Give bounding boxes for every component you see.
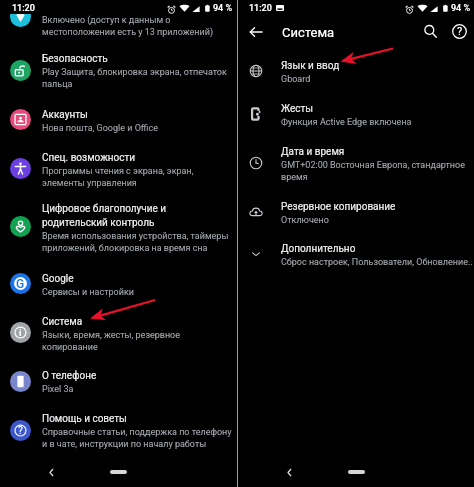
button[interactable]: Home [348, 470, 365, 474]
staticText: Функция Active Edge включена [281, 115, 412, 127]
button[interactable] [0, 412, 237, 448]
staticText: 94 % [213, 3, 233, 14]
staticText: Отключено [281, 213, 329, 225]
staticText: Нова пошта, Google и Office [42, 121, 159, 133]
button[interactable]: Back [45, 466, 58, 479]
staticText: Сервисы и настройки [42, 285, 134, 297]
button[interactable] [0, 266, 237, 302]
button[interactable]: Back [247, 23, 265, 41]
staticText: Система [42, 314, 83, 328]
button[interactable] [238, 96, 474, 132]
staticText: Gboard [281, 72, 311, 84]
staticText: Аккаунты [42, 107, 88, 121]
staticText: Сброс настроек, Пользователи, Обновление… [281, 255, 473, 267]
button[interactable] [0, 52, 237, 88]
staticText: Жесты [281, 101, 314, 115]
button[interactable] [0, 151, 237, 187]
staticText: Google [42, 271, 74, 285]
staticText: Резервное копирование [281, 199, 396, 213]
button[interactable]: Home [110, 470, 127, 474]
staticText: Помощь и советы [42, 411, 127, 425]
staticText: 11:20 [249, 3, 272, 14]
button[interactable] [238, 145, 474, 181]
button[interactable] [238, 194, 474, 230]
staticText: Спец. возможности [42, 150, 136, 164]
staticText: Время использования устройства, таймеры … [42, 229, 229, 253]
button[interactable] [238, 53, 474, 89]
button[interactable]: Help [451, 23, 468, 40]
staticText: ? [457, 25, 463, 38]
button[interactable] [0, 102, 237, 138]
button[interactable]: Back [283, 466, 296, 479]
staticText: 11:20 [12, 3, 35, 14]
staticText: GMT+02:00 Восточная Европа, стандартное … [281, 158, 465, 182]
staticText: Включено (доступ к данным о местоположен… [42, 13, 214, 37]
staticText: G [16, 277, 25, 290]
staticText: Цифровое благополучие и родительский кон… [42, 201, 167, 229]
staticText: 94 % [451, 3, 471, 14]
staticText: i [19, 327, 22, 338]
staticText: ? [18, 425, 23, 437]
button[interactable] [0, 315, 237, 351]
button[interactable] [0, 14, 237, 38]
staticText: Дата и время [281, 144, 345, 158]
staticText: О телефоне [42, 368, 97, 382]
staticText: Безопасность [42, 51, 108, 65]
button[interactable] [0, 363, 237, 399]
button[interactable] [238, 236, 474, 272]
staticText: Дополнительно [281, 241, 356, 255]
staticText: Языки, время, жесты, резервное копирован… [42, 328, 181, 352]
staticText: Программы чтения с экрана, экран, элемен… [42, 164, 194, 188]
staticText: Язык и ввод [281, 58, 340, 72]
staticText: Play Защита, блокировка экрана, отпечато… [42, 65, 227, 89]
button[interactable] [0, 209, 237, 245]
staticText: Система [282, 25, 335, 40]
staticText: Pixel 3a [42, 382, 74, 394]
button[interactable]: Search [422, 23, 439, 40]
staticText: Справочные статьи, поддержка по телефону… [42, 425, 232, 449]
